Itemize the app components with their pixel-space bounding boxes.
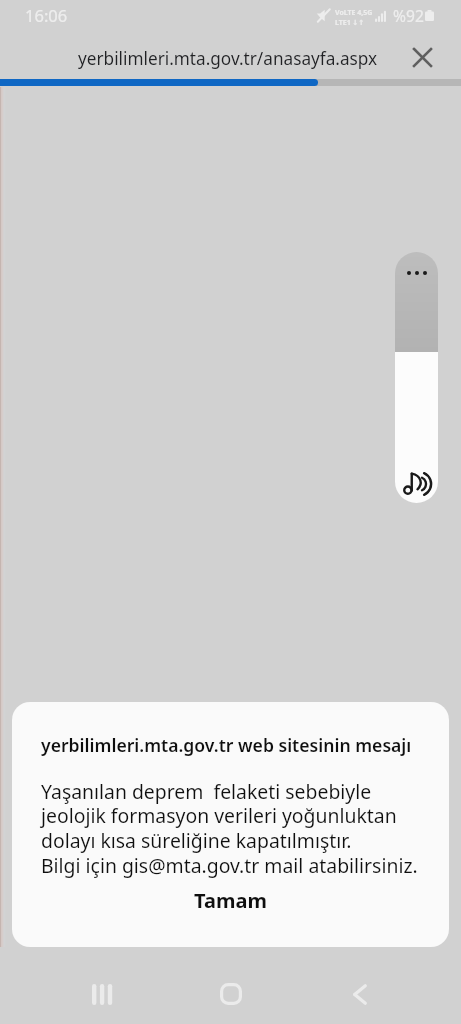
staticText: yerbilimleri.mta.gov.tr web sitesinin me… xyxy=(41,733,412,757)
staticText: VoLTE 4,5G xyxy=(335,8,373,18)
button[interactable]: Home xyxy=(202,970,259,1018)
staticText: Tamam xyxy=(194,887,267,914)
button[interactable]: Tamam xyxy=(12,883,449,917)
staticText: %92 xyxy=(393,5,424,26)
button[interactable]: Close tab xyxy=(401,36,444,79)
staticText: yerbilimleri.mta.gov.tr/anasayfa.aspx xyxy=(78,47,378,70)
button[interactable]: Edge panel handle xyxy=(395,252,438,503)
staticText: Yaşanılan deprem felaketi sebebiyle jeol… xyxy=(41,778,418,879)
button[interactable]: Back xyxy=(331,970,388,1018)
staticText: 16:06 xyxy=(25,4,68,26)
staticText: LTE1 ↓↑ xyxy=(335,18,365,28)
button[interactable]: Recent apps xyxy=(74,970,131,1018)
